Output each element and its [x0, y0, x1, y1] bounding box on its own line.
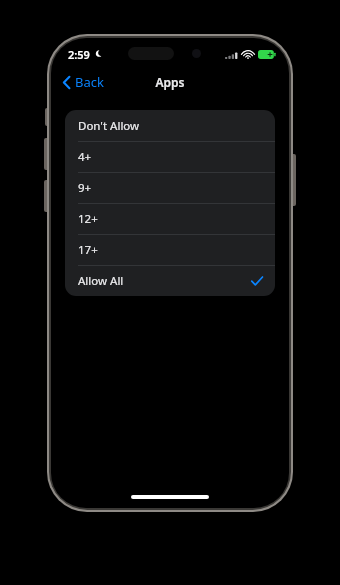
button[interactable]: 4+ [65, 142, 275, 172]
button[interactable]: 9+ [65, 173, 275, 203]
button[interactable]: Don't Allow [65, 110, 275, 141]
button[interactable]: 12+ [65, 204, 275, 234]
button[interactable]: Back [51, 69, 112, 95]
staticText: Back [75, 73, 104, 91]
staticText: 17+ [78, 242, 98, 258]
staticText: Don't Allow [78, 118, 140, 134]
staticText: 12+ [78, 211, 98, 227]
staticText: 4+ [78, 149, 92, 165]
staticText: 9+ [78, 180, 92, 196]
other: Selected [251, 276, 263, 286]
staticText: Allow All [78, 273, 124, 289]
button[interactable]: 17+ [65, 235, 275, 265]
staticText: Apps [155, 74, 185, 90]
staticText: 2:59 [68, 47, 90, 62]
button[interactable]: Allow All [65, 266, 275, 296]
